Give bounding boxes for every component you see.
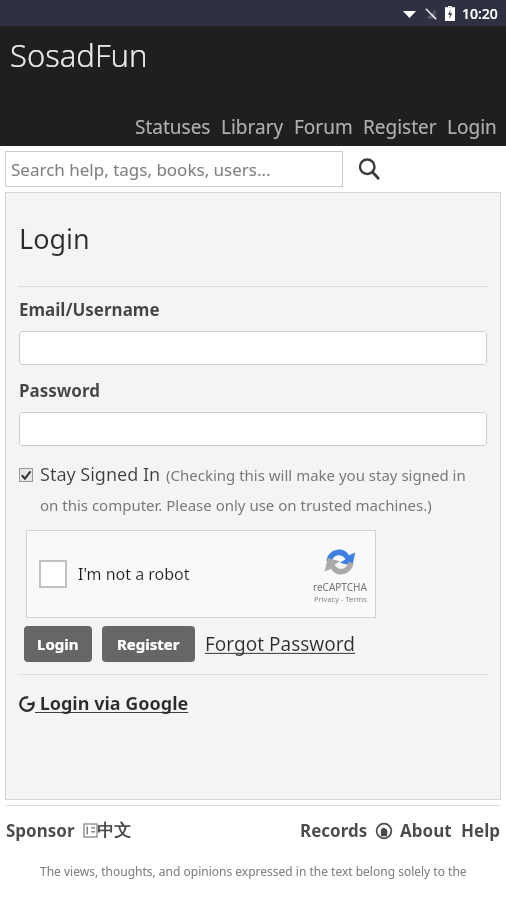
staticText: Privacy - Terms [314, 594, 367, 604]
button[interactable]: I'm not a robot [26, 530, 376, 618]
button[interactable]: Stay Signed In checkbox [19, 468, 33, 482]
button[interactable] [19, 412, 487, 446]
staticText: Login via Google [35, 691, 189, 716]
button[interactable]: GitHub [376, 823, 392, 839]
staticText: The views, thoughts, and opinions expres… [40, 863, 467, 879]
button[interactable]: Records [300, 819, 368, 842]
staticText: Records [300, 819, 368, 842]
staticText: Login [19, 220, 90, 257]
button[interactable]: Register [363, 114, 437, 140]
staticText: Forum [294, 114, 353, 140]
button[interactable] [19, 331, 487, 365]
staticText: Login [37, 634, 79, 654]
staticText: I'm not a robot [78, 563, 190, 585]
button[interactable]: Stay Signed In [40, 462, 161, 487]
button[interactable]: Forum [294, 114, 353, 140]
staticText: Sponsor [6, 819, 75, 842]
button[interactable]: Register [102, 626, 195, 662]
staticText: Help [461, 819, 500, 842]
button[interactable]: Statuses [135, 114, 211, 140]
button[interactable]: Search [352, 152, 386, 186]
staticText: (Checking this will make you stay signed… [166, 465, 466, 485]
button[interactable]: Search help, tags, books, users... [5, 151, 343, 187]
button[interactable]: Sponsor [6, 819, 75, 842]
staticText: reCAPTCHA [313, 580, 367, 594]
staticText: Statuses [135, 114, 211, 140]
staticText: About [400, 819, 452, 842]
button[interactable]: Login via Google [19, 691, 189, 716]
staticText: Email/Username [19, 298, 160, 321]
other: I'm not a robot [39, 560, 67, 588]
button[interactable]: Help [461, 819, 500, 842]
button[interactable]: Switch language to Chinese [84, 820, 131, 841]
button[interactable]: Library [221, 114, 284, 140]
button[interactable]: SosadFun [10, 34, 148, 76]
staticText: 10:20 [462, 4, 498, 23]
staticText: on this computer. Please only use on tru… [40, 495, 432, 515]
staticText: 中文 [97, 820, 131, 841]
staticText: Library [221, 114, 284, 140]
button[interactable]: Login [447, 114, 497, 140]
staticText: Password [19, 379, 100, 402]
staticText: Register [363, 114, 437, 140]
staticText: Login [447, 114, 497, 140]
button[interactable]: Forgot Password [205, 631, 355, 657]
staticText: Forgot Password [205, 631, 355, 657]
staticText: Register [117, 634, 180, 654]
button[interactable]: Login [24, 626, 92, 662]
staticText: Search help, tags, books, users... [11, 158, 271, 181]
button[interactable]: About [400, 819, 452, 842]
